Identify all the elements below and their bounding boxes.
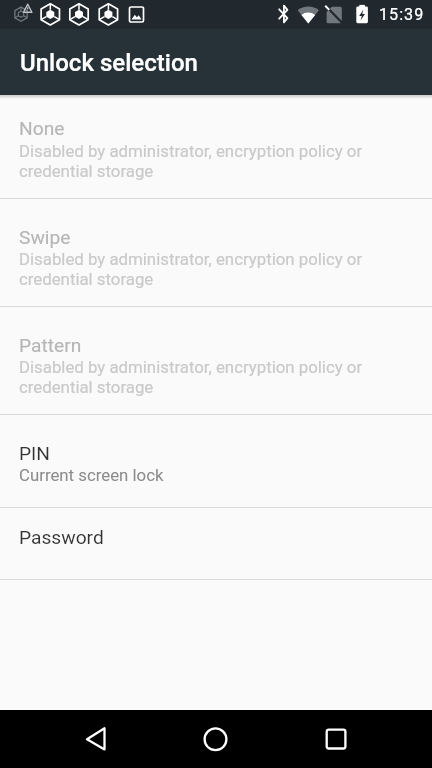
staticText: credential storage — [19, 377, 154, 397]
staticText: Disabled by administrator, encryption po… — [19, 141, 363, 161]
button[interactable]: PIN — [0, 414, 432, 507]
button[interactable]: Swipe — [0, 198, 432, 306]
staticText: Unlock selection — [20, 49, 198, 77]
button[interactable] — [193, 717, 237, 761]
staticText: Current screen lock — [19, 465, 164, 485]
staticText: 15:39 — [379, 5, 425, 24]
button[interactable]: None — [0, 95, 432, 198]
staticText: PIN — [19, 442, 51, 465]
button[interactable] — [74, 717, 118, 761]
staticText: credential storage — [19, 269, 154, 289]
button[interactable]: Password — [0, 507, 432, 579]
button[interactable]: Pattern — [0, 306, 432, 414]
staticText: Disabled by administrator, encryption po… — [19, 357, 363, 377]
staticText: Pattern — [19, 334, 82, 357]
staticText: Disabled by administrator, encryption po… — [19, 249, 363, 269]
staticText: credential storage — [19, 161, 154, 181]
staticText: None — [19, 117, 65, 140]
staticText: Password — [19, 526, 104, 549]
staticText: Swipe — [19, 226, 71, 249]
button[interactable] — [314, 717, 358, 761]
